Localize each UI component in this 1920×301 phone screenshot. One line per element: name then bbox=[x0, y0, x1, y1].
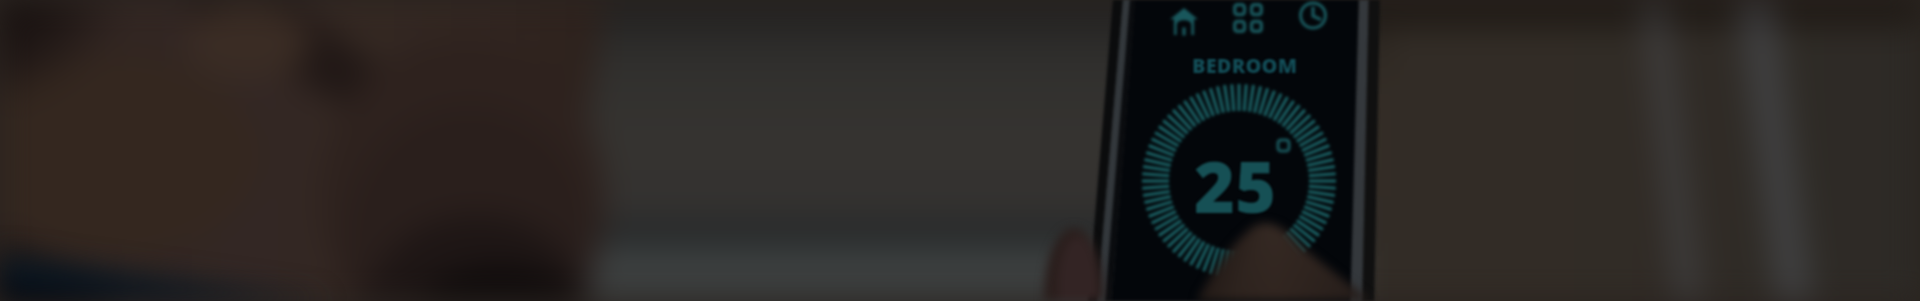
button[interactable]: BEDROOM bbox=[1192, 52, 1298, 79]
staticText: BEDROOM bbox=[1192, 52, 1298, 79]
staticText: 25 bbox=[1194, 138, 1277, 233]
